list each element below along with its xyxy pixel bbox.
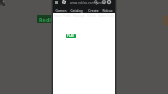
button[interactable]: Search [94,0,98,4]
staticText: Messages [73,14,86,18]
staticText: Redirect [39,16,56,23]
staticText: Home [54,14,62,18]
staticText: Games [55,8,67,13]
staticText: Catalog [70,8,83,13]
staticText: Avatar [98,14,106,18]
button[interactable]: Account [102,0,106,4]
staticText: Friends [87,14,96,18]
button[interactable]: PLAY [66,34,76,38]
button[interactable]: Catalog [67,7,85,13]
staticText: Profile [63,14,71,18]
staticText: Create [88,8,99,13]
button[interactable]: Settings [107,0,111,4]
staticText: PLAY [67,34,75,38]
staticText: www.roblox.com/games [70,1,106,5]
button[interactable]: Create [84,7,102,13]
button[interactable]: Games [52,7,70,13]
staticText: Trade [107,14,114,18]
staticText: Robux [102,8,113,13]
button[interactable]: Robux [98,7,116,13]
